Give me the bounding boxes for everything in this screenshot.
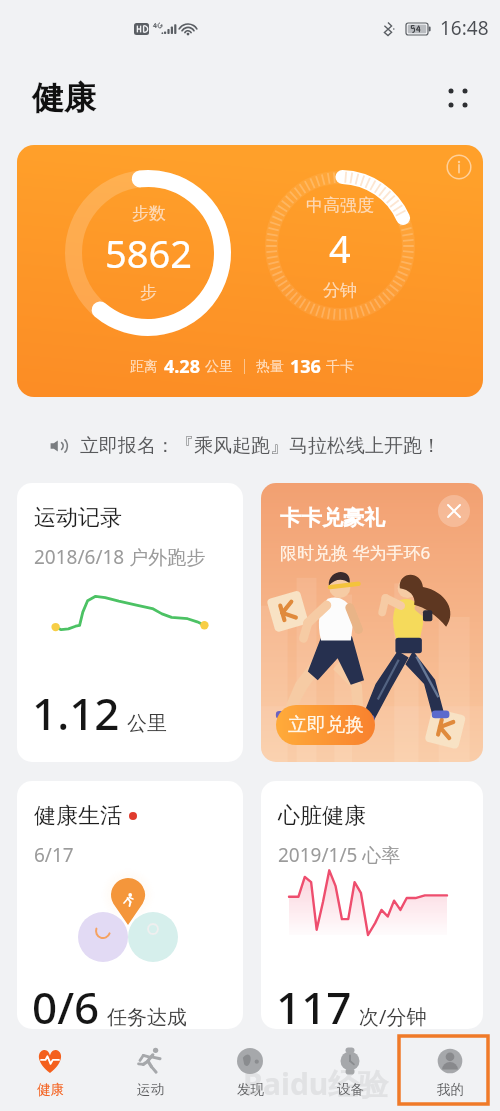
staticText: 16:48 [440, 15, 489, 41]
button[interactable]: Close [438, 495, 470, 527]
button[interactable]: 健康 [0, 1033, 100, 1111]
staticText: 运动 [137, 1081, 164, 1098]
staticText: 卡卡兑豪礼 [280, 505, 385, 531]
staticText: 中高强度 [306, 195, 374, 216]
staticText: 发现 [237, 1081, 264, 1098]
staticText: 任务达成 [107, 1005, 187, 1029]
button[interactable]: Info [446, 154, 472, 180]
staticText: 136 [290, 354, 321, 379]
staticText: 千卡 [326, 358, 354, 376]
staticText: 分钟 [323, 280, 357, 301]
staticText: Baidu经验 [243, 1063, 389, 1104]
staticText: 0/6 [32, 977, 100, 1029]
staticText: 公里 [127, 711, 167, 736]
button[interactable]: 卡卡兑豪礼 [261, 483, 483, 762]
staticText: 热量 [256, 358, 284, 376]
staticText: 设备 [337, 1081, 364, 1098]
staticText: 1.12 [32, 683, 120, 743]
button[interactable]: Info [17, 145, 483, 397]
staticText: 运动记录 [34, 504, 122, 532]
staticText: 距离 [130, 358, 158, 376]
button[interactable]: 立即报名：『乘风起跑』马拉松线上开跑！ [0, 423, 495, 469]
staticText: 步 [140, 282, 157, 303]
button[interactable]: More options [438, 78, 478, 118]
staticText: 6/17 [34, 842, 74, 868]
staticText: 立即报名：『乘风起跑』马拉松线上开跑！ [80, 434, 441, 458]
staticText: 健康 [32, 78, 96, 118]
staticText: 公里 [205, 358, 233, 376]
staticText: 2019/1/5 心率 [278, 842, 401, 868]
button[interactable]: 设备 [300, 1033, 400, 1111]
staticText: 立即兑换 [288, 713, 364, 737]
staticText: 心脏健康 [278, 802, 366, 830]
staticText: 我的 [437, 1081, 464, 1098]
staticText: 健康 [37, 1081, 64, 1098]
button[interactable]: 我的 [400, 1033, 500, 1111]
staticText: 5862 [105, 227, 192, 279]
staticText: 限时兑换 华为手环6 [280, 541, 431, 564]
button[interactable]: 心脏健康 [261, 781, 483, 1029]
staticText: 2018/6/18 户外跑步 [34, 544, 206, 570]
staticText: 次/分钟 [359, 1003, 427, 1029]
staticText: 4.28 [164, 354, 200, 379]
staticText: 步数 [132, 203, 166, 224]
staticText: 4 [329, 222, 351, 274]
button[interactable]: 运动 [100, 1033, 200, 1111]
button[interactable]: 运动记录 [17, 483, 243, 762]
button[interactable]: 立即兑换 [276, 705, 375, 745]
staticText: 117 [276, 977, 352, 1029]
button[interactable]: 发现 [200, 1033, 300, 1111]
staticText: 健康生活 [34, 802, 122, 830]
button[interactable]: 健康生活 [17, 781, 243, 1029]
